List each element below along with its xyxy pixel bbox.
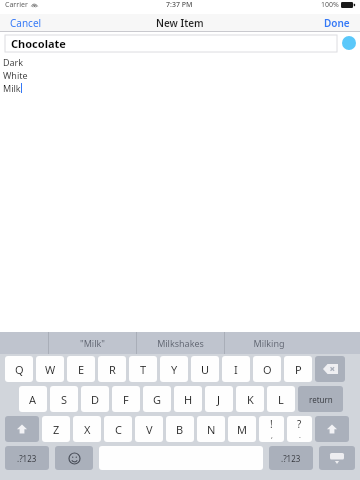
staticText: "Milk" xyxy=(80,337,105,349)
staticText: .?123 xyxy=(281,453,301,464)
button[interactable]: R xyxy=(98,356,126,382)
button[interactable]: H xyxy=(174,386,202,412)
button[interactable]: Shift xyxy=(315,416,349,442)
button[interactable]: Z xyxy=(42,416,70,442)
staticText: G xyxy=(153,392,162,407)
staticText: H xyxy=(184,392,193,407)
button[interactable]: S xyxy=(50,386,78,412)
staticText: R xyxy=(109,362,116,377)
staticText: 100% xyxy=(321,0,339,10)
button[interactable]: ? xyxy=(287,416,312,442)
staticText: Milking xyxy=(253,337,285,349)
button[interactable]: Shift xyxy=(5,416,39,442)
staticText: K xyxy=(247,392,254,407)
staticText: D xyxy=(91,392,100,407)
button[interactable]: return xyxy=(298,386,343,412)
button[interactable]: Milkshakes xyxy=(137,332,224,354)
staticText: Q xyxy=(15,362,24,377)
button[interactable]: W xyxy=(36,356,64,382)
staticText: T xyxy=(140,362,147,377)
button[interactable]: A xyxy=(19,386,47,412)
staticText: I xyxy=(234,362,238,377)
staticText: Milkshakes xyxy=(157,337,204,349)
button[interactable]: D xyxy=(81,386,109,412)
staticText: Dark xyxy=(3,56,24,68)
button[interactable]: Milking xyxy=(225,332,312,354)
staticText: W xyxy=(45,362,56,377)
button[interactable]: ! xyxy=(259,416,284,442)
staticText: M xyxy=(237,422,247,437)
staticText: X xyxy=(84,422,91,437)
button[interactable]: V xyxy=(135,416,163,442)
button[interactable]: Q xyxy=(5,356,33,382)
staticText: Cancel xyxy=(10,16,42,30)
staticText: Done xyxy=(324,16,350,30)
button[interactable]: Cancel xyxy=(0,14,52,32)
staticText: J xyxy=(217,392,221,407)
button[interactable]: T xyxy=(129,356,157,382)
button[interactable]: Backspace xyxy=(315,356,345,382)
button[interactable]: E xyxy=(67,356,95,382)
button[interactable]: I xyxy=(222,356,250,382)
button[interactable]: P xyxy=(284,356,312,382)
staticText: A xyxy=(29,392,37,407)
staticText: S xyxy=(61,392,68,407)
staticText: L xyxy=(278,392,284,407)
staticText: Y xyxy=(171,362,178,377)
staticText: N xyxy=(207,422,216,437)
button[interactable]: N xyxy=(197,416,225,442)
staticText: . xyxy=(299,431,301,441)
staticText: Z xyxy=(53,422,60,437)
button[interactable]: C xyxy=(104,416,132,442)
staticText: Chocolate xyxy=(11,36,66,51)
button[interactable]: F xyxy=(112,386,140,412)
button[interactable]: Color tag xyxy=(342,36,356,50)
staticText: , xyxy=(271,431,273,441)
staticText: C xyxy=(115,422,122,437)
staticText: P xyxy=(295,362,302,377)
button[interactable]: J xyxy=(205,386,233,412)
staticText: E xyxy=(78,362,85,377)
staticText: 7:37 PM xyxy=(166,0,193,10)
staticText: ? xyxy=(297,417,302,431)
button[interactable]: K xyxy=(236,386,264,412)
staticText: F xyxy=(123,392,129,407)
staticText: B xyxy=(176,422,184,437)
staticText: O xyxy=(263,362,272,377)
staticText: return xyxy=(309,394,333,405)
staticText: ! xyxy=(270,417,273,431)
button[interactable]: Chocolate xyxy=(5,35,337,52)
button[interactable]: L xyxy=(267,386,295,412)
staticText: V xyxy=(146,422,153,437)
button[interactable]: Emoji xyxy=(55,446,93,470)
button[interactable]: M xyxy=(228,416,256,442)
button[interactable]: X xyxy=(73,416,101,442)
staticText: U xyxy=(201,362,210,377)
button[interactable]: U xyxy=(191,356,219,382)
button[interactable]: .?123 xyxy=(5,446,49,470)
staticText: New Item xyxy=(156,16,204,30)
button[interactable]: Y xyxy=(160,356,188,382)
button[interactable]: B xyxy=(166,416,194,442)
button[interactable]: Done xyxy=(314,14,360,32)
button[interactable]: .?123 xyxy=(269,446,313,470)
staticText: White xyxy=(3,69,28,81)
button[interactable]: "Milk" xyxy=(49,332,136,354)
button[interactable]: G xyxy=(143,386,171,412)
staticText: Milk xyxy=(3,82,21,94)
staticText: Carrier xyxy=(5,0,28,10)
button[interactable]: O xyxy=(253,356,281,382)
button[interactable]: Hide keyboard xyxy=(319,446,355,470)
staticText: .?123 xyxy=(17,453,37,464)
